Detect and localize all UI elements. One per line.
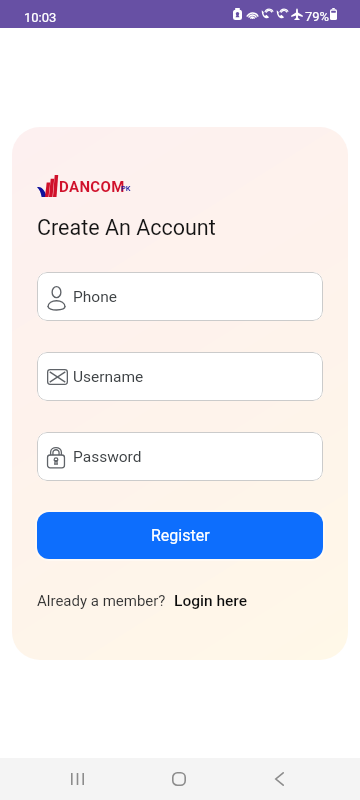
button[interactable]: Password: [37, 432, 323, 481]
staticText: Already a member?: [37, 592, 166, 610]
staticText: Password: [73, 448, 142, 466]
button[interactable]: Recent apps: [53, 761, 101, 797]
button[interactable]: Home: [155, 761, 203, 797]
button[interactable]: Back: [255, 761, 303, 797]
button[interactable]: Phone: [37, 272, 323, 321]
staticText: Register: [151, 526, 210, 545]
staticText: Create An Account: [37, 215, 216, 240]
staticText: 10:03: [24, 10, 57, 25]
staticText: Username: [73, 368, 144, 386]
staticText: PK: [121, 184, 131, 193]
button[interactable]: Login here: [174, 592, 247, 610]
staticText: 79%: [305, 9, 330, 24]
staticText: DANCOM: [59, 178, 125, 196]
staticText: Login here: [174, 592, 247, 610]
staticText: Phone: [73, 288, 117, 306]
button[interactable]: Username: [37, 352, 323, 401]
button[interactable]: Register: [37, 512, 323, 559]
